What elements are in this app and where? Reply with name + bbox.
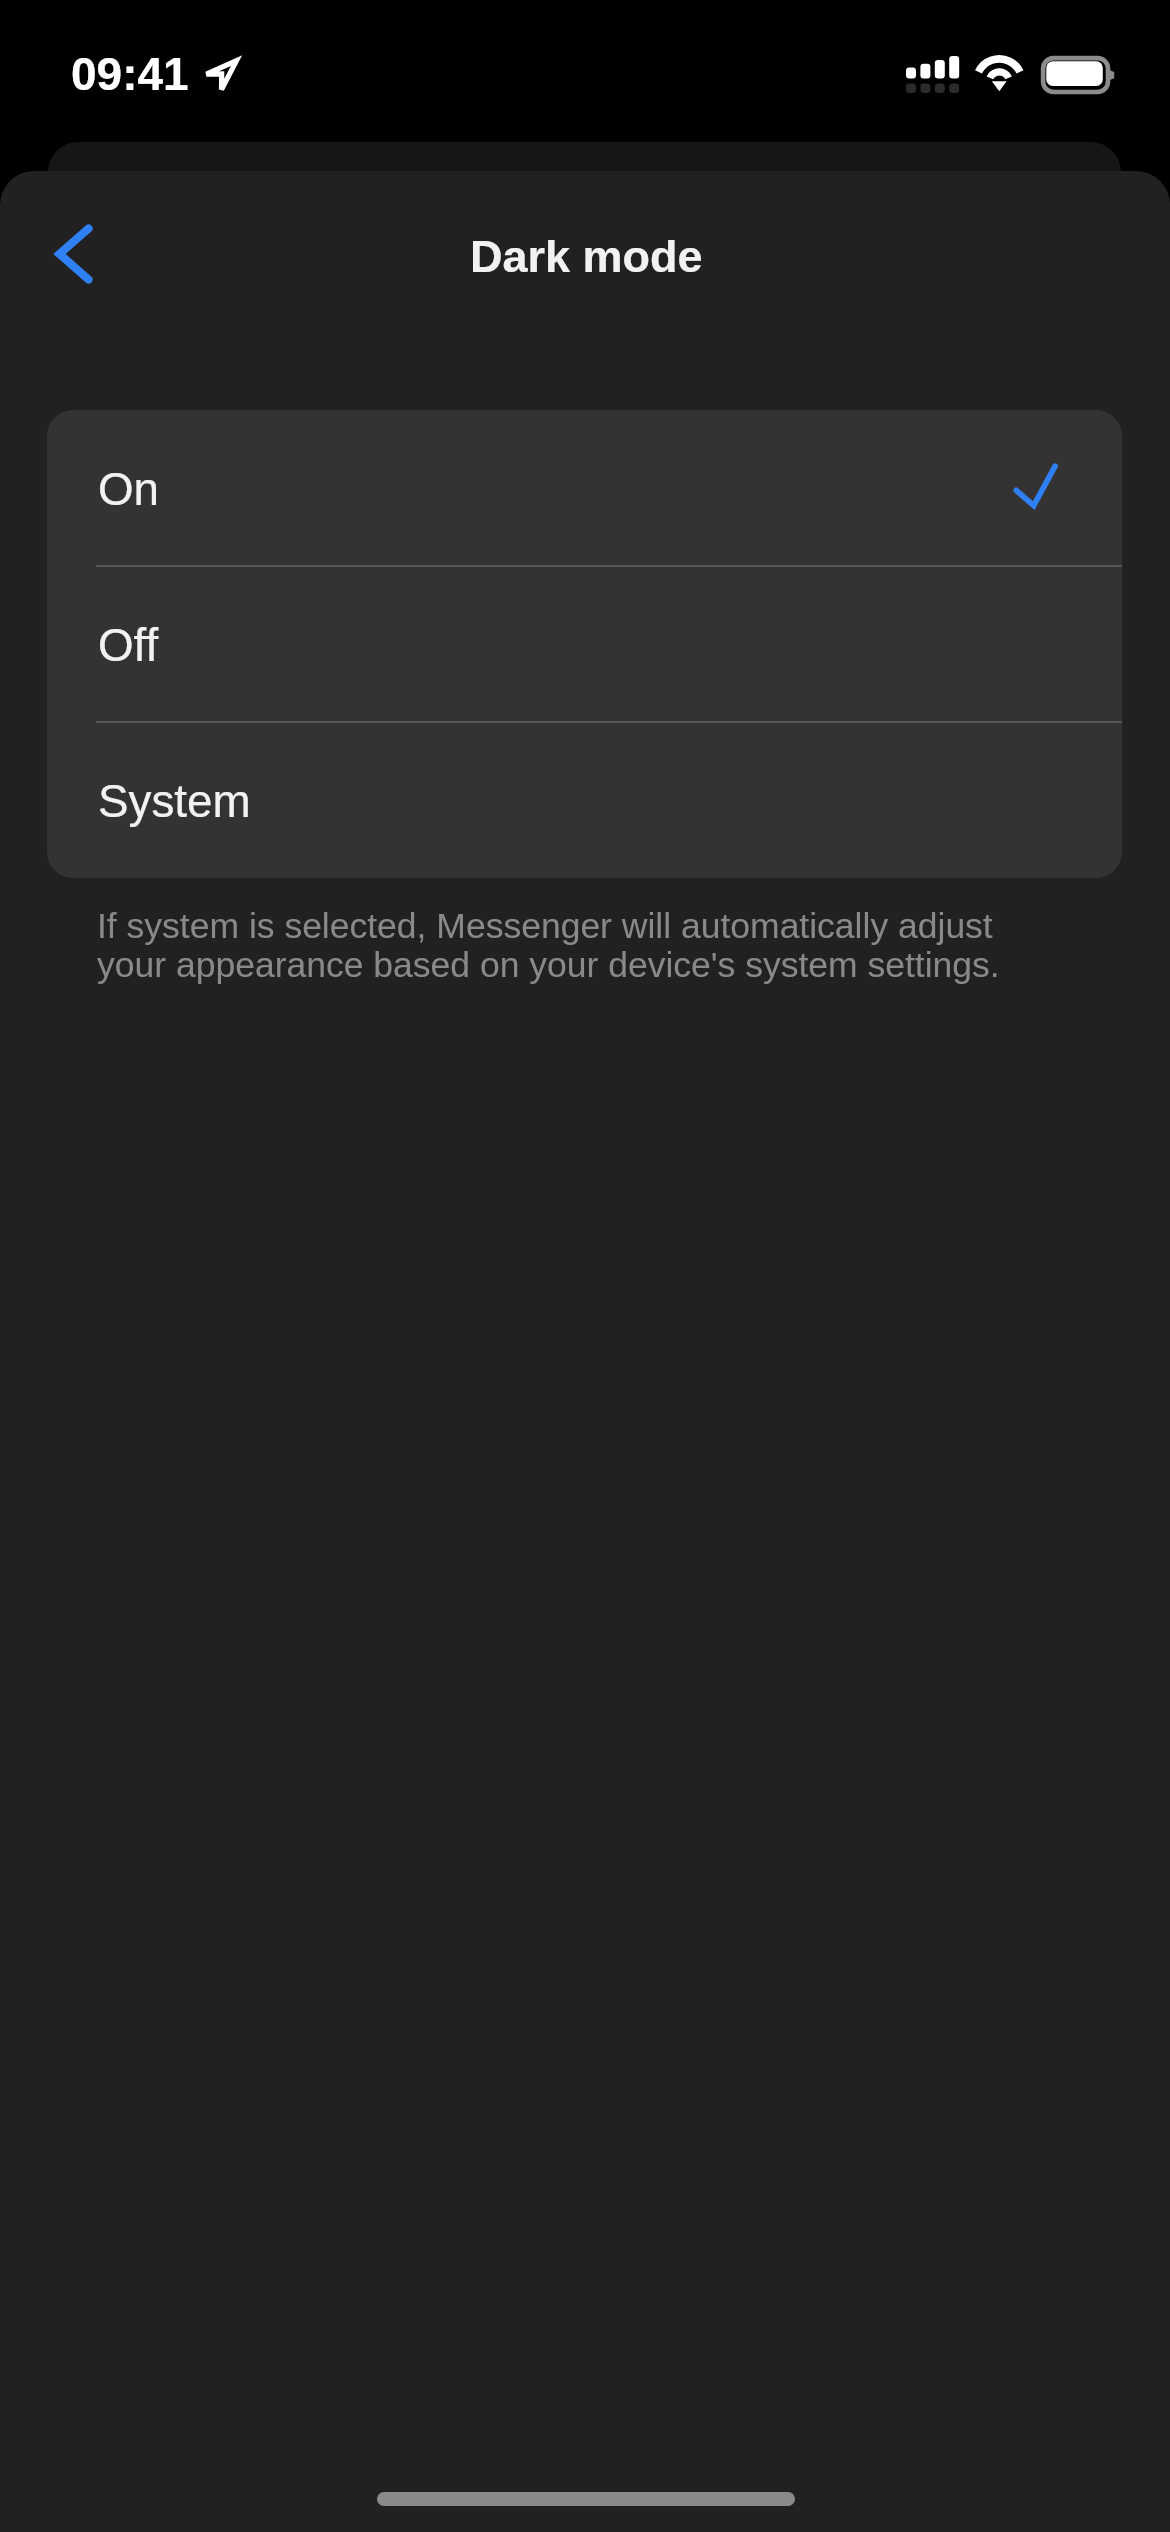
staticText: System	[98, 776, 251, 827]
button[interactable]: System	[47, 722, 1122, 878]
staticText: Dark mode	[470, 231, 703, 281]
button[interactable]: Off	[47, 566, 1122, 722]
button[interactable]: On	[47, 410, 1122, 566]
button[interactable]: Back	[20, 204, 120, 304]
staticText: Off	[98, 620, 159, 671]
staticText: 09:41	[71, 48, 189, 99]
staticText: If system is selected, Messenger will au…	[97, 906, 1009, 985]
staticText: On	[98, 464, 160, 515]
